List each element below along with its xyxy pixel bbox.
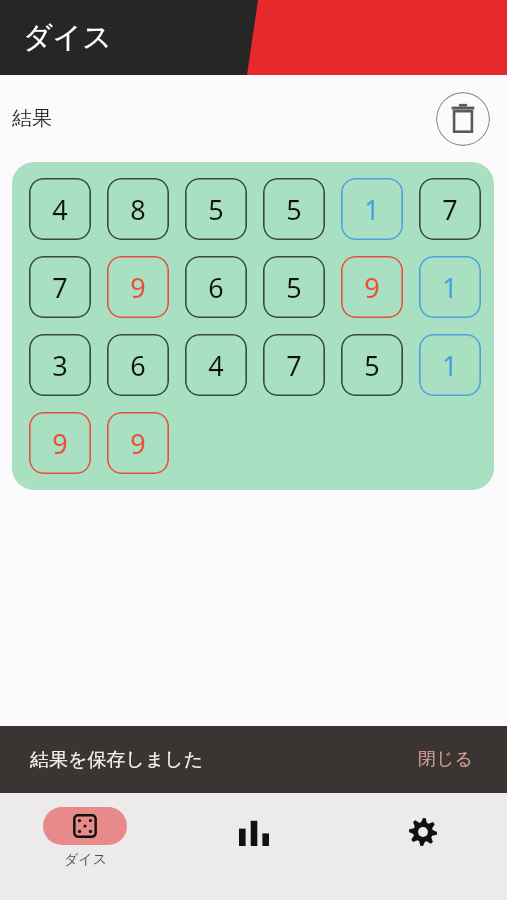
staticText: 6 <box>130 347 146 384</box>
button[interactable]: 1 <box>419 334 481 396</box>
staticText: 9 <box>130 269 146 306</box>
staticText: 9 <box>130 425 146 462</box>
staticText: 5 <box>286 191 302 228</box>
staticText: 9 <box>52 425 68 462</box>
button[interactable]: ダイス <box>0 793 169 900</box>
button[interactable]: 7 <box>263 334 325 396</box>
button[interactable]: 5 <box>263 178 325 240</box>
staticText: 1 <box>442 347 458 384</box>
staticText: 結果 <box>12 106 52 131</box>
button[interactable]: 4 <box>29 178 91 240</box>
button[interactable]: 5 <box>341 334 403 396</box>
staticText: 閉じる <box>418 748 473 771</box>
button[interactable]: 5 <box>185 178 247 240</box>
staticText: 3 <box>52 347 68 384</box>
staticText: 結果を保存しました <box>30 748 204 772</box>
staticText: 6 <box>208 269 224 306</box>
staticText: 7 <box>442 191 458 228</box>
button[interactable]: 閉じる <box>412 742 479 777</box>
button[interactable]: Settings <box>338 793 507 900</box>
button[interactable]: 9 <box>107 412 169 474</box>
button[interactable]: 8 <box>107 178 169 240</box>
button[interactable]: 6 <box>107 334 169 396</box>
button[interactable]: 7 <box>419 178 481 240</box>
button[interactable]: Statistics <box>169 793 338 900</box>
staticText: 1 <box>364 191 380 228</box>
button[interactable]: 9 <box>341 256 403 318</box>
button[interactable]: Delete results <box>436 92 490 146</box>
staticText: 8 <box>130 191 146 228</box>
button[interactable]: 5 <box>263 256 325 318</box>
staticText: 9 <box>364 269 380 306</box>
staticText: 5 <box>208 191 224 228</box>
button[interactable]: 1 <box>419 256 481 318</box>
staticText: 7 <box>286 347 302 384</box>
button[interactable]: 結果を保存しました <box>0 726 507 793</box>
button[interactable]: 9 <box>29 412 91 474</box>
staticText: ダイス <box>64 851 107 869</box>
button[interactable]: 7 <box>29 256 91 318</box>
button[interactable]: 6 <box>185 256 247 318</box>
staticText: 5 <box>364 347 380 384</box>
button[interactable]: 4 <box>185 334 247 396</box>
staticText: 4 <box>208 347 224 384</box>
staticText: 7 <box>52 269 68 306</box>
button[interactable]: 4 <box>12 162 494 490</box>
staticText: 4 <box>52 191 68 228</box>
button[interactable]: 1 <box>341 178 403 240</box>
button[interactable]: 9 <box>107 256 169 318</box>
staticText: 5 <box>286 269 302 306</box>
staticText: ダイス <box>23 19 113 56</box>
staticText: 1 <box>442 269 458 306</box>
button[interactable]: 3 <box>29 334 91 396</box>
